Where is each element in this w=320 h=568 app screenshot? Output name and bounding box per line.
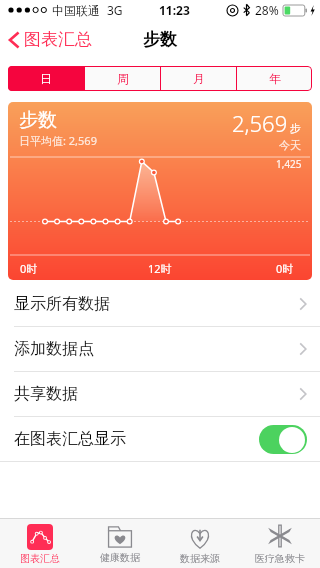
button[interactable]: 健康数据: [80, 519, 160, 568]
button[interactable]: 医疗急救卡: [240, 519, 320, 568]
staticText: 在图表汇总显示: [14, 429, 126, 449]
staticText: 数据来源: [180, 552, 220, 565]
staticText: 步数: [143, 29, 177, 50]
staticText: 日: [40, 71, 52, 86]
staticText: 年: [269, 71, 281, 86]
staticText: 11:23: [159, 2, 190, 18]
button[interactable]: 月: [161, 66, 236, 91]
staticText: 28%: [255, 2, 279, 18]
staticText: 步: [290, 121, 301, 135]
staticText: 日平均值: 2,569: [19, 133, 97, 148]
staticText: 12时: [148, 261, 172, 276]
button[interactable]: 共享数据: [0, 372, 320, 416]
button[interactable]: 步数: [8, 102, 312, 280]
button[interactable]: 在图表汇总显示 开关: [259, 425, 307, 454]
button[interactable]: 图表汇总: [0, 519, 80, 568]
staticText: 图表汇总: [24, 29, 92, 50]
staticText: 步数: [19, 108, 57, 132]
button[interactable]: 日: [8, 66, 84, 91]
button[interactable]: 年: [237, 66, 312, 91]
button[interactable]: 在图表汇总显示: [0, 417, 320, 461]
staticText: 0时: [20, 261, 38, 276]
staticText: 健康数据: [100, 551, 140, 564]
staticText: 今天: [279, 138, 301, 152]
staticText: 2,569: [232, 108, 288, 138]
staticText: 周: [117, 71, 129, 86]
button[interactable]: 显示所有数据: [0, 282, 320, 326]
staticText: 1,425: [276, 157, 302, 171]
staticText: 中国联通: [52, 3, 100, 18]
button[interactable]: 周: [85, 66, 160, 91]
button[interactable]: 数据来源: [160, 519, 240, 568]
staticText: 3G: [107, 2, 123, 18]
button[interactable]: 图表汇总: [0, 25, 100, 54]
staticText: 月: [193, 71, 205, 86]
staticText: 显示所有数据: [14, 294, 110, 314]
staticText: 医疗急救卡: [255, 552, 305, 565]
staticText: 0时: [276, 261, 294, 276]
staticText: 添加数据点: [14, 339, 94, 359]
staticText: 图表汇总: [20, 552, 60, 565]
button[interactable]: 添加数据点: [0, 327, 320, 371]
staticText: 共享数据: [14, 384, 78, 404]
